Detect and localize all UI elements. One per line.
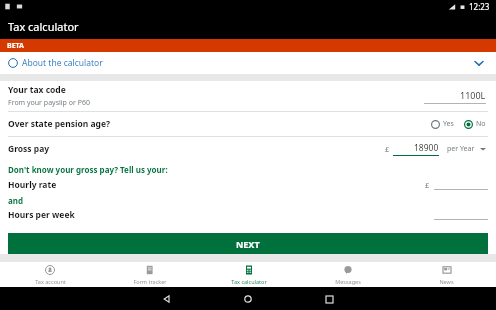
staticText: 12:23 — [469, 1, 490, 12]
staticText: News — [439, 278, 454, 285]
staticText: Hours per week — [8, 209, 75, 221]
staticText: BETA — [7, 41, 24, 51]
button[interactable]: About the calculator — [0, 52, 496, 74]
staticText: 18900 — [414, 142, 439, 154]
staticText: From your payslip or P60 — [8, 98, 90, 108]
staticText: Messages — [335, 278, 361, 285]
staticText: £ — [425, 180, 430, 190]
staticText: Tax account — [35, 278, 66, 285]
button[interactable]: Recent apps — [321, 291, 337, 307]
button[interactable]: Form tracker — [100, 262, 199, 287]
button[interactable]: NEXT — [8, 233, 488, 254]
other: Expand — [472, 56, 486, 70]
button[interactable]: Tax account — [0, 262, 100, 287]
button[interactable]: Messages — [298, 262, 397, 287]
staticText: and — [8, 195, 24, 206]
staticText: Tax calculator — [231, 278, 267, 285]
staticText: Hourly rate — [8, 179, 57, 191]
staticText: 1100L — [460, 89, 486, 101]
staticText: Don't know your gross pay? Tell us your: — [8, 164, 168, 175]
staticText: Yes — [443, 119, 454, 129]
button[interactable]: Your tax code — [0, 81, 496, 111]
staticText: Your tax code — [8, 84, 66, 96]
button[interactable]: Yes — [430, 117, 455, 131]
button[interactable]: Home — [240, 291, 256, 307]
button[interactable]: No — [463, 117, 487, 131]
staticText: £ — [385, 144, 390, 154]
button[interactable]: per Year — [445, 142, 488, 156]
staticText: NEXT — [236, 238, 260, 250]
button[interactable]: News — [397, 262, 496, 287]
staticText: per Year — [447, 144, 475, 154]
button[interactable]: Back — [159, 291, 175, 307]
staticText: Over state pension age? — [8, 118, 111, 130]
staticText: About the calculator — [22, 57, 103, 69]
staticText: Form tracker — [133, 278, 167, 285]
staticText: Tax calculator — [8, 19, 79, 34]
staticText: Gross pay — [8, 143, 50, 155]
staticText: No — [476, 119, 486, 129]
button[interactable]: Tax calculator — [199, 262, 298, 287]
